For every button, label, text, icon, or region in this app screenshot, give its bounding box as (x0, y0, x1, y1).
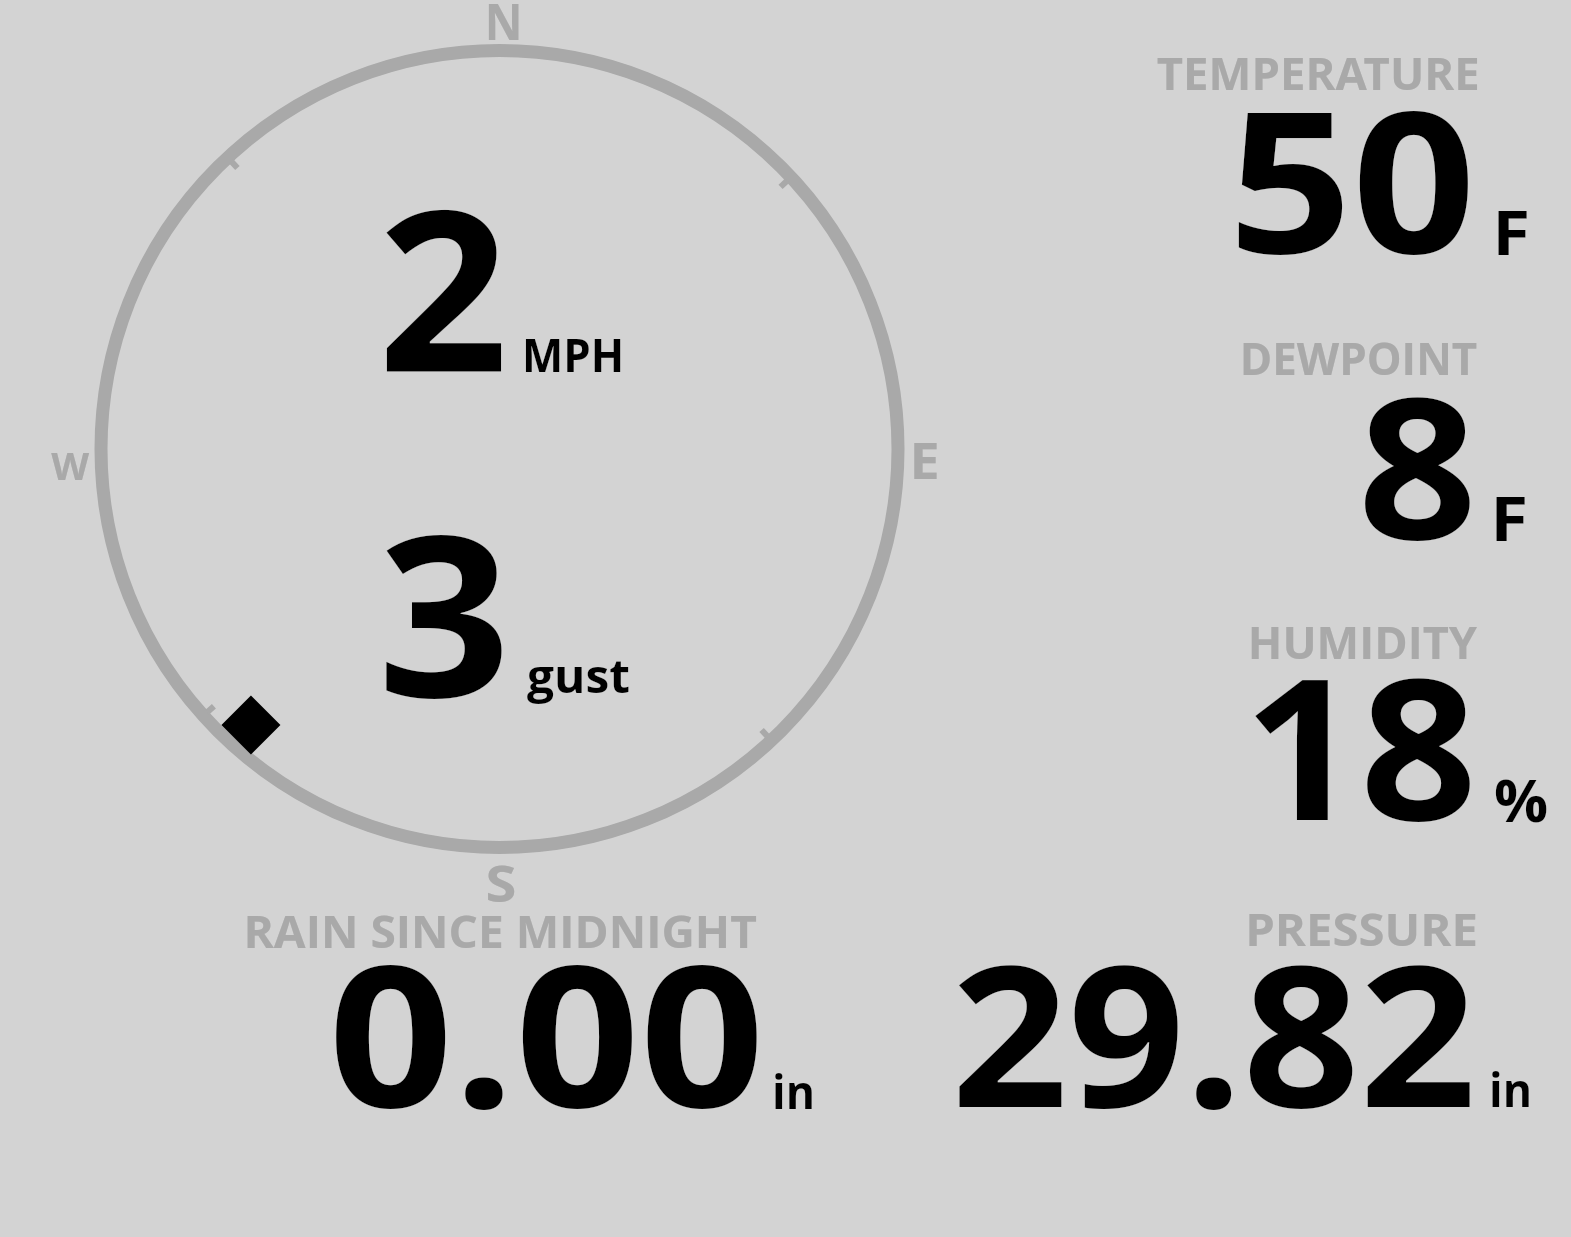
button[interactable]: Pressure 29.82 in (900, 900, 1560, 1130)
button[interactable]: Humidity 18 percent (1100, 610, 1571, 855)
button[interactable]: Wind 2 MPH, gust 3, from the south-west (45, 18, 955, 908)
button[interactable]: Dewpoint 8 F (1100, 325, 1571, 570)
button[interactable]: Temperature 50 F (1100, 40, 1571, 285)
button[interactable]: Rain since midnight 0.00 in (200, 900, 840, 1130)
